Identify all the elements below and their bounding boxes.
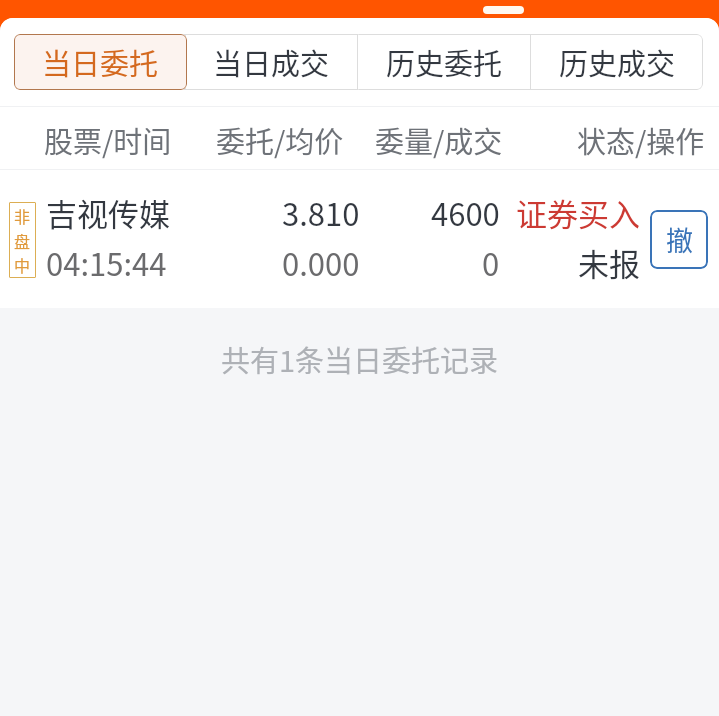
staticText: 共有1条当日委托记录 (0, 338, 719, 380)
staticText: 4600 (431, 190, 500, 235)
staticText: 状态/操作 (577, 119, 705, 161)
staticText: 历史成交 (559, 41, 676, 83)
button[interactable]: 非 (0, 170, 719, 308)
button[interactable]: 当日委托 (14, 34, 187, 90)
staticText: 证券买入 (516, 190, 640, 235)
button[interactable]: 历史委托 (358, 34, 530, 90)
staticText: 未报 (578, 240, 640, 285)
staticText: 非 (14, 204, 31, 227)
staticText: 当日成交 (213, 41, 330, 83)
staticText: 04:15:44 (46, 240, 167, 285)
staticText: 历史委托 (386, 41, 503, 83)
staticText: 撤 (666, 220, 693, 259)
staticText: 0.000 (282, 240, 360, 285)
staticText: 3.810 (282, 190, 360, 235)
staticText: 盘 (14, 229, 31, 252)
staticText: 吉视传媒 (46, 190, 170, 235)
staticText: 委量/成交 (375, 119, 503, 161)
staticText: 0 (482, 240, 500, 285)
button[interactable] (14, 34, 185, 90)
button[interactable]: 撤单 (650, 210, 708, 269)
staticText: 中 (14, 253, 31, 276)
staticText: 股票/时间 (44, 119, 172, 161)
button[interactable]: 历史成交 (531, 34, 703, 90)
staticText: 委托/均价 (216, 119, 344, 161)
staticText: 当日委托 (42, 41, 159, 83)
button[interactable]: 当日成交 (186, 34, 357, 90)
